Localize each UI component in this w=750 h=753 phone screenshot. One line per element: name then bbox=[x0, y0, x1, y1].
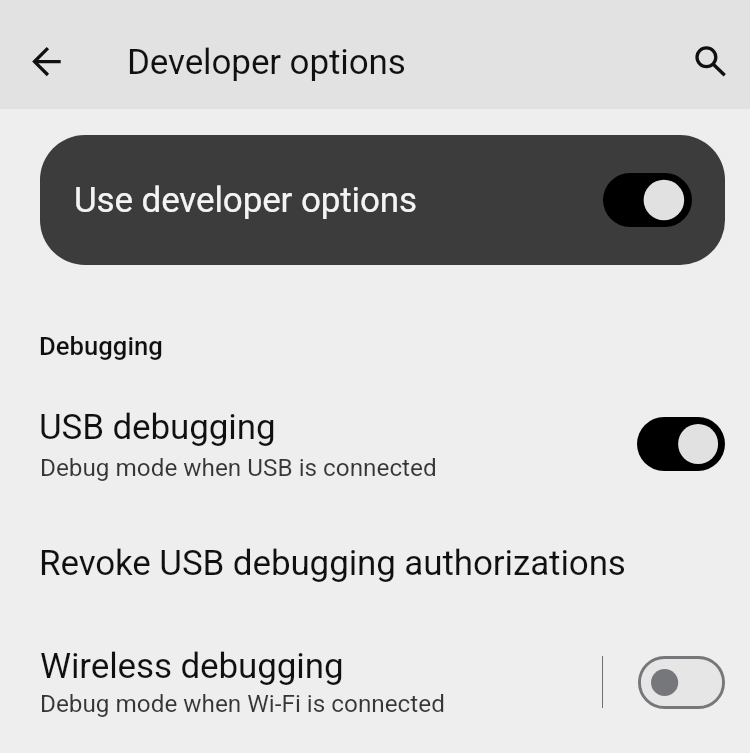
button[interactable]: USB debugging bbox=[637, 417, 725, 471]
staticText: Debugging bbox=[39, 331, 163, 361]
staticText: Revoke USB debugging authorizations bbox=[39, 543, 626, 584]
staticText: USB debugging bbox=[39, 407, 276, 448]
staticText: Use developer options bbox=[74, 180, 418, 221]
button[interactable]: Revoke USB debugging authorizations bbox=[0, 518, 750, 608]
staticText: Developer options bbox=[127, 42, 406, 83]
button[interactable]: Toggle wireless debugging bbox=[625, 641, 737, 723]
button[interactable]: Navigate up bbox=[18, 26, 74, 82]
button[interactable]: Use developer options bbox=[603, 173, 692, 227]
button[interactable]: USB debugging bbox=[0, 390, 750, 494]
button[interactable]: Use developer options bbox=[40, 135, 725, 265]
button[interactable]: Wireless debugging bbox=[0, 628, 595, 740]
staticText: Debug mode when USB is connected bbox=[40, 453, 437, 481]
button[interactable]: Search bbox=[678, 29, 734, 85]
staticText: Debug mode when Wi-Fi is connected bbox=[40, 689, 445, 717]
staticText: Wireless debugging bbox=[40, 646, 344, 687]
